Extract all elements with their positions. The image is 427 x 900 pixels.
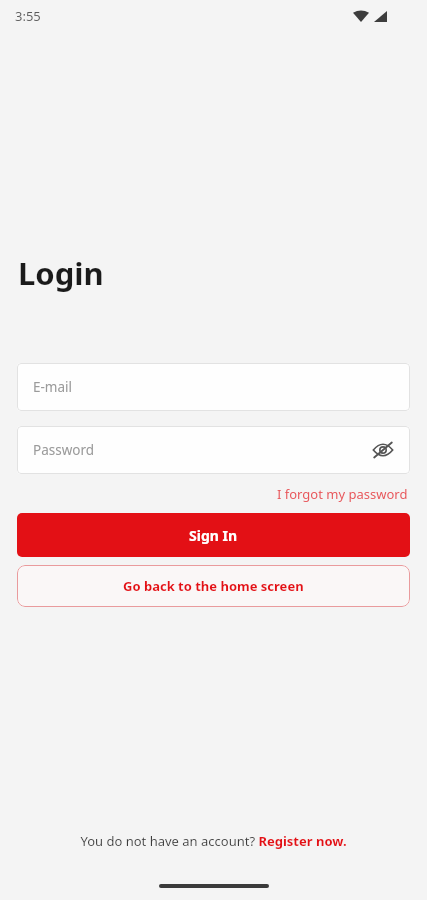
button[interactable]: Sign In bbox=[17, 513, 410, 557]
staticText: Password bbox=[33, 441, 95, 459]
staticText: Login bbox=[18, 252, 104, 294]
button[interactable]: E-mail bbox=[17, 363, 410, 411]
staticText: Sign In bbox=[189, 526, 238, 545]
button[interactable]: You do not have an account? Register now… bbox=[76, 828, 351, 854]
button[interactable]: Go back to the home screen bbox=[17, 565, 410, 607]
button[interactable]: I forgot my password bbox=[275, 482, 410, 506]
staticText: E-mail bbox=[33, 378, 73, 396]
staticText: Go back to the home screen bbox=[123, 577, 304, 595]
button[interactable]: Show password bbox=[366, 433, 400, 467]
staticText: You do not have an account? Register now… bbox=[80, 832, 347, 850]
staticText: I forgot my password bbox=[277, 485, 408, 503]
staticText: 3:55 bbox=[15, 7, 41, 25]
button[interactable]: Password bbox=[17, 426, 410, 474]
